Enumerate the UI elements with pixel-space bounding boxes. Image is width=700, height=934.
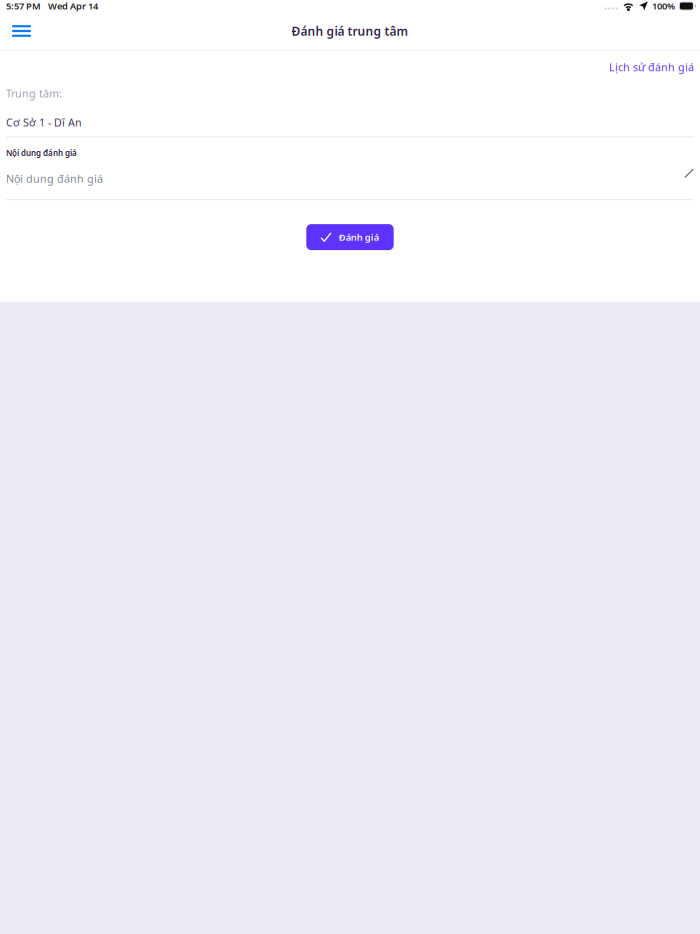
staticText: 5:57 PM (6, 0, 41, 12)
button[interactable]: Lịch sử đánh giá (603, 55, 700, 79)
staticText: Trung tâm: (6, 86, 62, 100)
staticText: Nội dung đánh giá (6, 147, 77, 158)
staticText: Wed Apr 14 (48, 0, 98, 12)
button[interactable]: Đánh giá (306, 224, 394, 250)
staticText: Cơ Sở 1 - Dĩ An (6, 115, 82, 129)
staticText: Lịch sử đánh giá (609, 60, 694, 74)
staticText: Nội dung đánh giá (6, 171, 103, 186)
button[interactable]: Edit (680, 168, 696, 189)
staticText: Đánh giá (339, 231, 379, 243)
staticText: 100% (652, 0, 675, 12)
staticText: Đánh giá trung tâm (291, 23, 408, 39)
button[interactable]: Menu (0, 16, 43, 46)
